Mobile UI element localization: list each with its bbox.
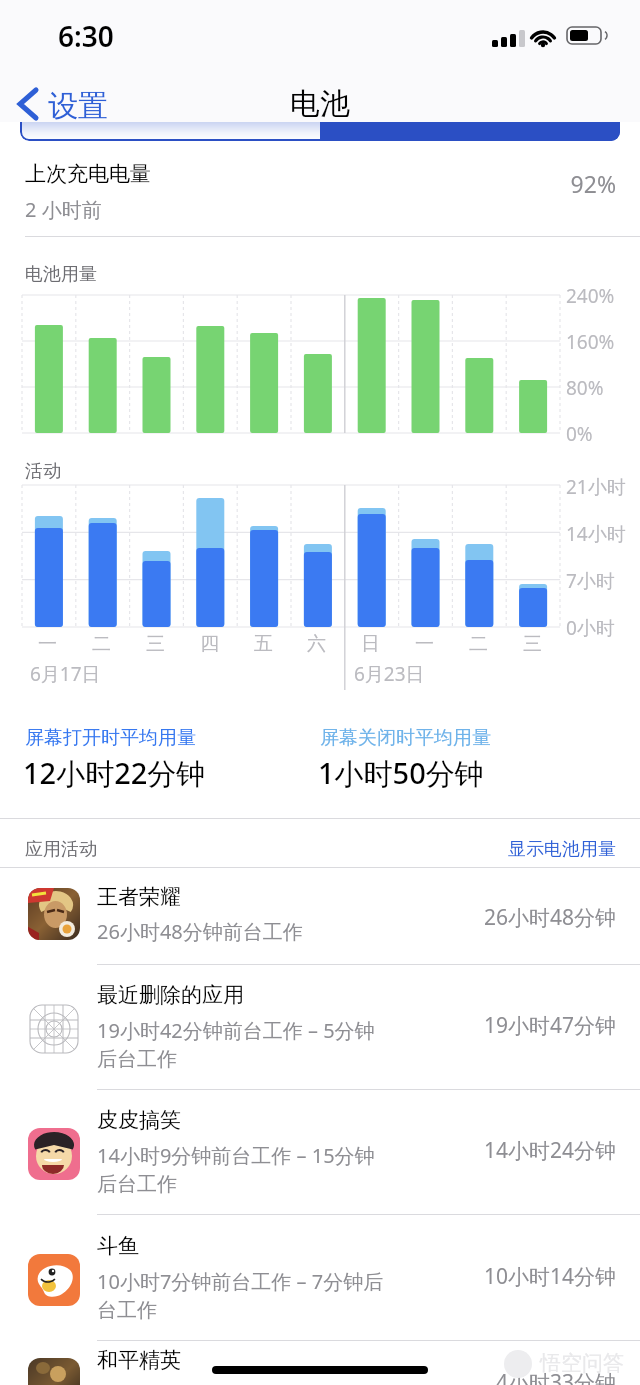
staticText: 19小时42分钟前台工作 – 5分钟 <box>97 1017 375 1044</box>
staticText: 26小时48分钟 <box>483 903 616 932</box>
staticText: 14小时9分钟前台工作 – 15分钟 <box>97 1142 375 1169</box>
staticText: 6月23日 <box>354 661 425 687</box>
staticText: 7小时 <box>566 568 615 594</box>
button[interactable] <box>0 1216 640 1340</box>
staticText: 四 <box>200 632 219 656</box>
staticText: 6月17日 <box>30 661 101 687</box>
staticText: 0小时 <box>566 615 615 641</box>
staticText: 悟空问答 <box>540 1350 624 1376</box>
staticText: 后台工作 <box>97 1047 177 1072</box>
staticText: 二 <box>469 632 488 656</box>
button[interactable]: 显示电池用量 <box>316 838 616 861</box>
staticText: 一 <box>38 632 57 656</box>
button[interactable] <box>0 1342 640 1385</box>
button[interactable] <box>0 966 640 1089</box>
staticText: 1小时50分钟 <box>318 753 484 793</box>
staticText: 2 小时前 <box>25 196 102 223</box>
staticText: 皮皮搞笑 <box>97 1107 181 1133</box>
staticText: 14小时24分钟 <box>483 1136 616 1165</box>
staticText: 和平精英 <box>97 1347 181 1373</box>
staticText: 五 <box>254 632 273 656</box>
staticText: 19小时47分钟 <box>483 1011 616 1040</box>
staticText: 160% <box>566 329 615 355</box>
staticText: 王者荣耀 <box>97 884 181 910</box>
staticText: 二 <box>92 632 111 656</box>
staticText: 0% <box>566 421 593 447</box>
staticText: 电池用量 <box>25 263 97 286</box>
staticText: 活动 <box>25 460 61 483</box>
staticText: 92% <box>570 168 616 199</box>
staticText: 电池 <box>290 85 350 123</box>
staticText: 六 <box>307 632 326 656</box>
staticText: 日 <box>361 632 380 656</box>
staticText: 一 <box>415 632 434 656</box>
staticText: 三 <box>146 632 165 656</box>
button[interactable] <box>0 1091 640 1214</box>
staticText: 12小时22分钟 <box>23 753 206 793</box>
staticText: 最近删除的应用 <box>97 982 244 1008</box>
staticText: 台工作 <box>97 1298 157 1323</box>
staticText: 26小时48分钟前台工作 <box>97 918 303 945</box>
staticText: 14小时 <box>566 521 626 547</box>
button[interactable] <box>0 870 640 964</box>
button[interactable] <box>20 107 620 141</box>
staticText: 240% <box>566 283 615 309</box>
staticText: 屏幕打开时平均用量 <box>25 726 196 750</box>
staticText: 显示电池用量 <box>508 838 616 861</box>
staticText: 屏幕关闭时平均用量 <box>320 726 491 750</box>
staticText: 80% <box>566 375 604 401</box>
staticText: 10小时7分钟前台工作 – 7分钟后 <box>97 1268 384 1295</box>
staticText: 6:30 <box>58 17 114 55</box>
staticText: 10小时14分钟 <box>483 1262 616 1291</box>
staticText: 21小时 <box>566 474 626 500</box>
staticText: 上次充电电量 <box>25 161 151 187</box>
staticText: 三 <box>523 632 542 656</box>
staticText: 后台工作 <box>97 1172 177 1197</box>
button[interactable]: 设置 <box>10 84 130 128</box>
staticText: 应用活动 <box>25 838 97 861</box>
staticText: 设置 <box>48 87 108 125</box>
staticText: 斗鱼 <box>97 1233 139 1259</box>
staticText: 4小时33分钟 <box>495 1368 616 1385</box>
